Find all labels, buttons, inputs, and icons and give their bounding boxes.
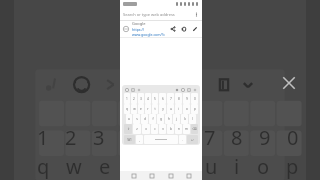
button[interactable]: Back: [166, 171, 175, 180]
button[interactable]: s: [133, 114, 140, 124]
button[interactable]: r: [145, 104, 151, 114]
button[interactable]: Keyboard tool 6: [192, 87, 198, 93]
staticText: v: [162, 127, 164, 131]
staticText: i: [234, 153, 240, 180]
staticText: 7: [204, 124, 216, 151]
button[interactable]: 2: [131, 93, 137, 104]
button[interactable]: p: [191, 104, 198, 114]
staticText: 1: [126, 97, 128, 101]
staticText: d: [144, 117, 146, 121]
staticText: 9: [186, 97, 188, 101]
staticText: 4: [147, 97, 149, 101]
staticText: 3: [140, 97, 142, 101]
button[interactable]: 1: [124, 93, 130, 104]
staticText: a: [128, 117, 130, 121]
button[interactable]: 9: [183, 93, 190, 104]
button[interactable]: y: [159, 104, 166, 114]
button[interactable]: k: [181, 114, 188, 124]
button[interactable]: h: [165, 114, 172, 124]
button[interactable]: n: [175, 124, 182, 134]
button[interactable]: Copy: [180, 25, 188, 33]
staticText: 2: [133, 97, 135, 101]
button[interactable]: Keyboard tool 2: [136, 87, 142, 93]
staticText: j: [176, 117, 177, 121]
button[interactable]: 8: [175, 93, 182, 104]
staticText: e: [140, 107, 142, 111]
button[interactable]: t: [152, 104, 158, 114]
button[interactable]: z: [133, 124, 141, 134]
staticText: u: [205, 153, 218, 180]
staticText: p: [194, 107, 196, 111]
button[interactable]: Search or type web address: [120, 8, 202, 20]
button[interactable]: ⌫: [191, 124, 198, 134]
button[interactable]: v: [159, 124, 166, 134]
staticText: l: [192, 117, 193, 121]
staticText: 6: [176, 124, 188, 151]
staticText: Search or type web address: [123, 12, 194, 17]
staticText: x: [145, 127, 147, 131]
button[interactable]: Keyboard tool 5: [186, 87, 192, 93]
button[interactable]: j: [173, 114, 180, 124]
button[interactable]: a: [126, 114, 132, 124]
staticText: z: [136, 127, 138, 131]
staticText: ⌫: [192, 127, 197, 131]
button[interactable]: 3: [138, 93, 144, 104]
button[interactable]: ⇧: [124, 124, 132, 134]
staticText: c: [154, 127, 156, 131]
staticText: g: [160, 117, 162, 121]
staticText: y: [177, 153, 188, 180]
staticText: w: [133, 107, 136, 111]
button[interactable]: 4: [145, 93, 151, 104]
button[interactable]: 6: [159, 93, 166, 104]
button[interactable]: b: [167, 124, 174, 134]
staticText: ,: [139, 138, 140, 142]
button[interactable]: e: [138, 104, 144, 114]
button[interactable]: Menu: [184, 171, 193, 180]
button[interactable]: o: [183, 104, 190, 114]
button[interactable]: Recents: [129, 171, 138, 180]
button[interactable]: q: [124, 104, 130, 114]
staticText: 9: [259, 124, 271, 151]
button[interactable]: 7: [167, 93, 174, 104]
button[interactable]: x: [142, 124, 150, 134]
staticText: 0: [194, 97, 196, 101]
staticText: k: [184, 117, 186, 121]
staticText: 0: [287, 124, 299, 151]
button[interactable]: d: [141, 114, 148, 124]
staticText: y: [162, 107, 164, 111]
button[interactable]: Google: [120, 21, 202, 37]
button[interactable]: Keyboard tool 4: [180, 87, 186, 93]
button[interactable]: l: [189, 114, 196, 124]
staticText: Google: [132, 21, 146, 26]
button[interactable]: !#1: [124, 135, 135, 144]
staticText: https://www.google.com/?c: [132, 27, 169, 37]
button[interactable]: Keyboard tool 0: [124, 87, 130, 93]
staticText: t: [154, 107, 156, 111]
staticText: f: [152, 117, 154, 121]
button[interactable]: Keyboard tool 1: [130, 87, 136, 93]
button[interactable]: f: [149, 114, 156, 124]
button[interactable]: c: [151, 124, 158, 134]
button[interactable]: Share: [169, 25, 177, 33]
button[interactable]: ↵: [187, 135, 198, 144]
button[interactable]: Edit: [191, 25, 199, 33]
button[interactable]: 5: [152, 93, 158, 104]
button[interactable]: Home: [147, 171, 156, 180]
button[interactable]: Space: [144, 135, 178, 144]
staticText: 8: [178, 97, 180, 101]
staticText: r: [147, 107, 149, 111]
button[interactable]: 0: [191, 93, 198, 104]
button[interactable]: u: [167, 104, 174, 114]
button[interactable]: m: [183, 124, 190, 134]
button[interactable]: i: [175, 104, 182, 114]
button[interactable]: Close: [278, 72, 300, 94]
staticText: 5: [154, 97, 156, 101]
staticText: 5: [148, 124, 160, 151]
button[interactable]: Keyboard tool 3: [174, 87, 180, 93]
button[interactable]: ,: [136, 135, 143, 144]
staticText: o: [186, 107, 188, 111]
button[interactable]: g: [157, 114, 164, 124]
button[interactable]: w: [131, 104, 137, 114]
staticText: o: [257, 153, 270, 180]
